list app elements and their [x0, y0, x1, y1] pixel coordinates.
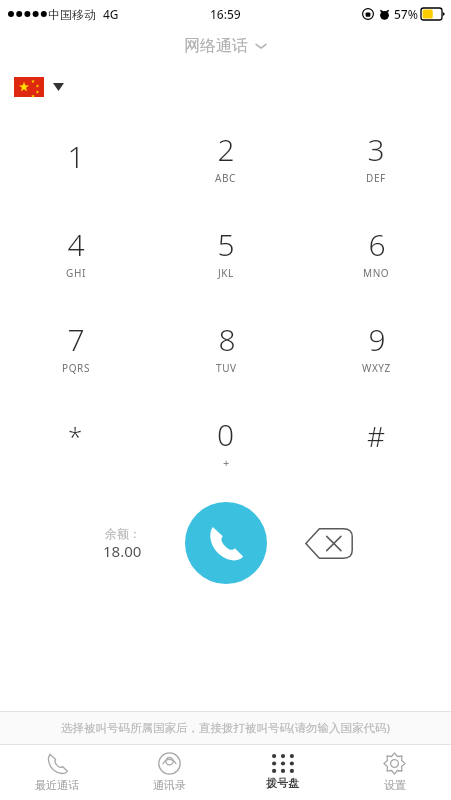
staticText: WXYZ — [362, 361, 391, 375]
staticText: 0 — [217, 414, 235, 455]
staticText: PQRS — [62, 361, 90, 375]
button[interactable]: 1 — [0, 109, 151, 204]
staticText: + — [223, 455, 230, 470]
button[interactable]: 7 — [0, 299, 151, 394]
button[interactable]: 通讯录 — [113, 744, 225, 800]
staticText: 6 — [368, 224, 386, 265]
button[interactable]: 设置 — [338, 744, 450, 800]
staticText: 拨号盘 — [266, 776, 299, 790]
staticText: DEF — [366, 171, 386, 185]
staticText: 3 — [367, 129, 385, 170]
staticText: # — [367, 417, 386, 455]
button[interactable]: Call — [185, 502, 267, 584]
staticText: 57% — [394, 6, 418, 22]
button[interactable] — [14, 65, 451, 109]
staticText: 网络通话 — [184, 36, 248, 56]
staticText: MNO — [363, 266, 390, 280]
button[interactable]: Delete — [300, 523, 358, 563]
staticText: 最近通话 — [35, 778, 79, 792]
button[interactable]: 8 — [151, 299, 301, 394]
staticText: 4 — [67, 224, 85, 265]
button[interactable]: 9 — [301, 299, 451, 394]
staticText: ABC — [215, 171, 237, 185]
staticText: 中国移动 — [48, 7, 96, 22]
staticText: 9 — [368, 319, 386, 360]
staticText: 7 — [67, 319, 85, 360]
button[interactable]: 2 — [151, 109, 301, 204]
staticText: JKL — [218, 266, 234, 280]
staticText: 1 — [67, 136, 85, 177]
button[interactable]: 4 — [0, 204, 151, 299]
staticText: TUV — [216, 361, 237, 375]
staticText: 16:59 — [210, 6, 241, 22]
staticText: 设置 — [384, 778, 406, 792]
staticText: 通讯录 — [153, 778, 186, 792]
staticText: 余额： — [105, 526, 141, 541]
button[interactable]: 6 — [301, 204, 451, 299]
button[interactable]: 网络通话 — [184, 36, 267, 56]
button[interactable]: * — [0, 394, 151, 489]
button[interactable]: 3 — [301, 109, 451, 204]
staticText: 5 — [217, 224, 235, 265]
button[interactable]: # — [301, 394, 451, 489]
staticText: 选择被叫号码所属国家后，直接拨打被叫号码(请勿输入国家代码) — [61, 720, 390, 736]
staticText: 8 — [218, 319, 236, 360]
button[interactable]: 拨号盘 — [226, 744, 338, 800]
staticText: 2 — [217, 129, 235, 170]
button[interactable]: 最近通话 — [1, 744, 113, 800]
button[interactable]: 0 — [151, 394, 301, 489]
button[interactable]: 5 — [151, 204, 301, 299]
staticText: GHI — [66, 266, 86, 280]
staticText: 4G — [103, 6, 119, 22]
staticText: 18.00 — [103, 541, 142, 561]
staticText: * — [68, 418, 83, 453]
